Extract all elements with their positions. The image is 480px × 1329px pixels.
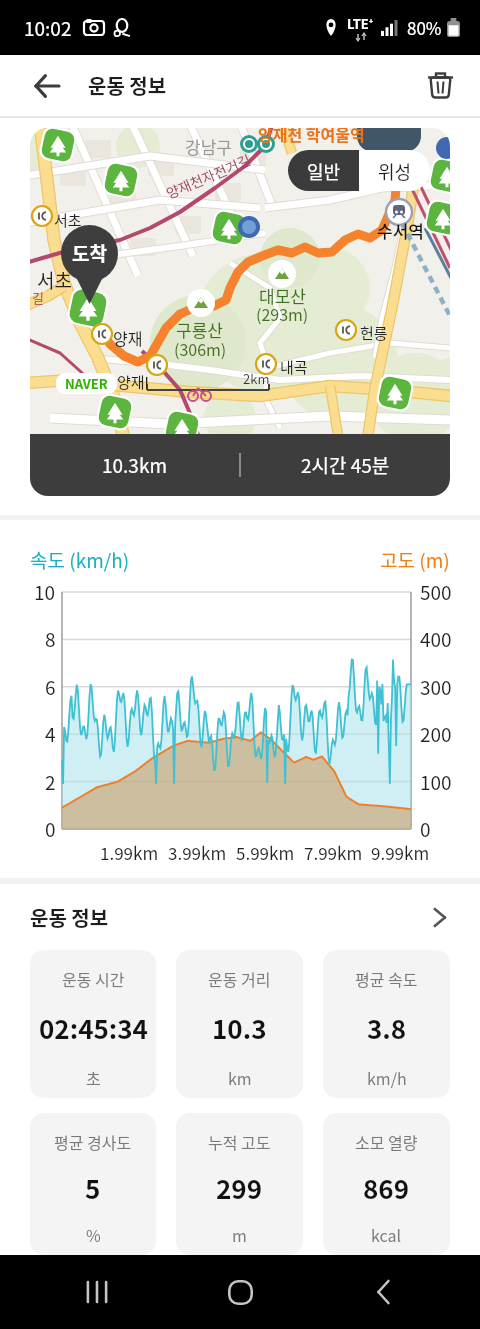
button[interactable]: 10.3km: [30, 434, 450, 496]
staticText: 강남구: [185, 134, 232, 159]
staticText: 내곡: [280, 356, 308, 378]
button[interactable]: 평균 경사도: [30, 1113, 156, 1255]
button[interactable]: 운동 시간: [30, 950, 156, 1098]
button[interactable]: 소모 열량: [323, 1113, 450, 1255]
staticText: 누적 고도: [208, 1130, 271, 1153]
button[interactable]: [312, 1255, 455, 1329]
staticText: 2km: [243, 369, 270, 388]
staticText: 고도 (m): [380, 546, 450, 574]
button[interactable]: 양재천 학여울역: [30, 128, 450, 496]
staticText: 서초: [37, 266, 72, 294]
staticText: 5: [85, 1169, 101, 1207]
staticText: 500: [420, 578, 452, 606]
staticText: 양재I: [117, 371, 149, 393]
staticText: 헌릉: [360, 322, 388, 344]
staticText: 10.3km: [102, 451, 167, 479]
staticText: 대모산: [259, 283, 306, 308]
staticText: 초: [86, 1066, 101, 1089]
staticText: m: [232, 1223, 247, 1246]
staticText: 3.99km: [168, 840, 227, 865]
button[interactable]: 평균 속도: [323, 950, 450, 1098]
staticText: km: [228, 1066, 252, 1089]
staticText: (293m): [256, 302, 309, 325]
button[interactable]: [169, 1255, 312, 1329]
staticText: 길: [32, 288, 44, 307]
staticText: 10: [34, 578, 56, 606]
staticText: 양재천 학여울역: [258, 128, 365, 145]
button[interactable]: 운동 정보: [30, 884, 450, 950]
staticText: 80%: [407, 15, 442, 40]
staticText: 2: [45, 768, 56, 796]
staticText: 0: [45, 815, 56, 843]
button[interactable]: 일반: [288, 150, 359, 191]
staticText: 3.8: [367, 1009, 407, 1047]
staticText: 5.99km: [236, 840, 295, 865]
button[interactable]: [25, 1255, 169, 1329]
staticText: 299: [216, 1169, 263, 1207]
staticText: 일반: [307, 158, 341, 184]
staticText: 양재천자전거길: [163, 149, 254, 203]
staticText: (306m): [174, 337, 227, 360]
staticText: 4: [45, 720, 56, 748]
staticText: kcal: [371, 1223, 402, 1246]
staticText: 구룡산: [176, 317, 223, 342]
staticText: 운동 시간: [62, 967, 125, 990]
staticText: 0: [420, 815, 431, 843]
staticText: 운동 정보: [88, 71, 167, 100]
staticText: 운동 거리: [208, 967, 271, 990]
staticText: 10:02: [24, 14, 72, 42]
staticText: 양재: [113, 326, 143, 349]
staticText: 운동 정보: [30, 903, 109, 932]
staticText: km/h: [367, 1066, 407, 1089]
staticText: 10.3: [212, 1009, 267, 1047]
button[interactable]: 위성: [359, 150, 430, 191]
staticText: 평균 속도: [355, 967, 418, 990]
staticText: 도착: [72, 239, 107, 267]
staticText: 02:45:34: [39, 1009, 148, 1047]
staticText: 수서역: [377, 218, 424, 243]
staticText: 400: [420, 625, 452, 653]
staticText: 100: [420, 768, 452, 796]
staticText: 1.99km: [100, 840, 159, 865]
button[interactable]: [14, 55, 80, 116]
button[interactable]: 운동 거리: [176, 950, 303, 1098]
staticText: 위성: [378, 158, 412, 184]
staticText: 속도 (km/h): [30, 546, 130, 574]
staticText: 8: [45, 625, 56, 653]
staticText: NAVER: [65, 374, 108, 393]
staticText: 300: [420, 673, 452, 701]
staticText: 9.99km: [371, 840, 430, 865]
staticText: LTE⁺: [347, 14, 374, 33]
staticText: 2시간 45분: [301, 451, 390, 479]
staticText: 869: [363, 1169, 410, 1207]
staticText: 7.99km: [304, 840, 363, 865]
staticText: 소모 열량: [355, 1130, 418, 1153]
staticText: 평균 경사도: [54, 1130, 132, 1153]
button[interactable]: 누적 고도: [176, 1113, 303, 1255]
staticText: 서초: [54, 209, 82, 231]
staticText: %: [86, 1223, 101, 1246]
staticText: 200: [420, 720, 452, 748]
button[interactable]: [412, 55, 468, 116]
staticText: 6: [45, 673, 56, 701]
